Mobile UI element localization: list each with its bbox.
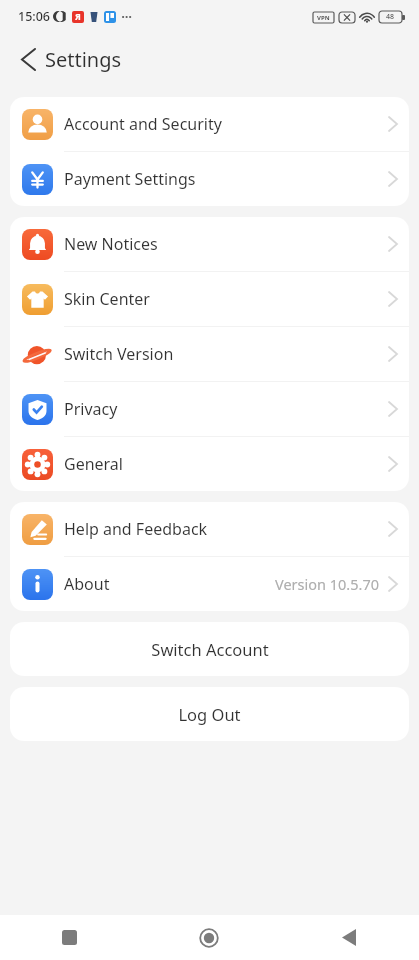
staticText: VPN bbox=[317, 14, 330, 22]
staticText: Log Out bbox=[178, 703, 241, 725]
staticText: Help and Feedback bbox=[64, 518, 208, 540]
staticText: 48 bbox=[386, 12, 395, 22]
staticText: 15:06 bbox=[18, 8, 51, 25]
staticText: Settings bbox=[45, 46, 122, 73]
staticText: Payment Settings bbox=[64, 168, 196, 190]
button[interactable]: Privacy bbox=[10, 382, 409, 437]
button[interactable]: Switch Account bbox=[10, 622, 409, 676]
staticText: Switch Account bbox=[151, 638, 269, 660]
staticText: New Notices bbox=[64, 233, 158, 255]
button[interactable]: Payment Settings bbox=[10, 152, 409, 206]
button[interactable]: Switch Version bbox=[10, 327, 409, 382]
button[interactable]: Home bbox=[139, 915, 279, 960]
button[interactable]: General bbox=[10, 437, 409, 491]
button[interactable]: Back bbox=[8, 39, 48, 79]
button[interactable]: Account and Security bbox=[10, 97, 409, 152]
staticText: About bbox=[64, 573, 110, 595]
button[interactable]: Help and Feedback bbox=[10, 502, 409, 557]
button[interactable]: New Notices bbox=[10, 217, 409, 272]
button[interactable]: About bbox=[10, 557, 409, 611]
staticText: Version 10.5.70 bbox=[275, 574, 380, 594]
button[interactable]: Back bbox=[279, 915, 419, 960]
button[interactable]: Recents bbox=[0, 915, 139, 960]
staticText: Privacy bbox=[64, 398, 118, 420]
staticText: Я bbox=[75, 11, 81, 23]
button[interactable]: Skin Center bbox=[10, 272, 409, 327]
staticText: Skin Center bbox=[64, 288, 150, 310]
button[interactable]: Log Out bbox=[10, 687, 409, 741]
staticText: Switch Version bbox=[64, 343, 174, 365]
staticText: General bbox=[64, 453, 123, 475]
staticText: Account and Security bbox=[64, 113, 222, 135]
